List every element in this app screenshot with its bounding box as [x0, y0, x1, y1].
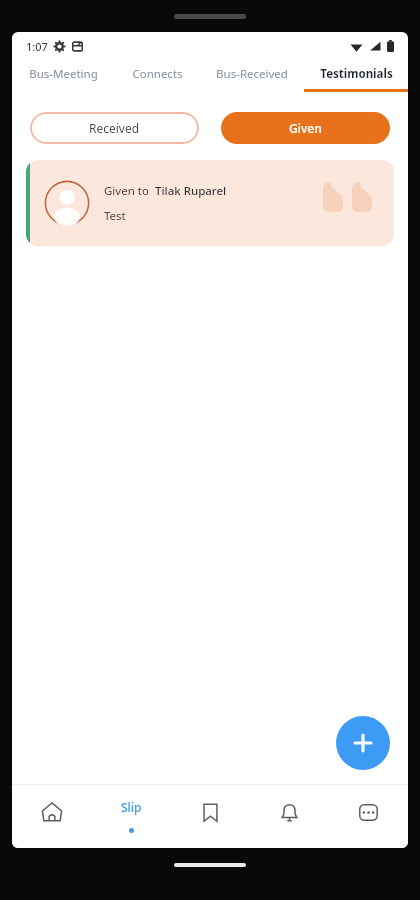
staticText: Received: [89, 120, 140, 136]
button[interactable]: More: [329, 784, 408, 848]
button[interactable]: Home: [12, 784, 92, 848]
staticText: Given to: [104, 183, 152, 199]
button[interactable]: Notifications: [250, 784, 329, 848]
staticText: 1:07: [26, 39, 48, 54]
staticText: Testimonials: [320, 66, 393, 82]
button[interactable]: Given to: [26, 160, 394, 246]
button[interactable]: Bus-Received: [200, 60, 304, 96]
button[interactable]: Bookmarks: [171, 784, 250, 848]
staticText: Slip: [121, 799, 142, 815]
button[interactable]: Bus-Meeting: [12, 60, 115, 96]
staticText: Bus-Received: [216, 66, 288, 82]
staticText: Connects: [132, 66, 183, 82]
staticText: Given: [289, 120, 322, 136]
staticText: Tilak Ruparel: [152, 183, 227, 199]
staticText: Bus-Meeting: [29, 66, 98, 82]
button[interactable]: Received: [30, 112, 199, 144]
button[interactable]: Testimonials: [304, 60, 408, 96]
button[interactable]: Slip: [92, 784, 171, 848]
button[interactable]: Connects: [115, 60, 200, 96]
staticText: Test: [104, 208, 126, 224]
button[interactable]: Given: [221, 112, 390, 144]
button[interactable]: Add: [336, 716, 390, 770]
